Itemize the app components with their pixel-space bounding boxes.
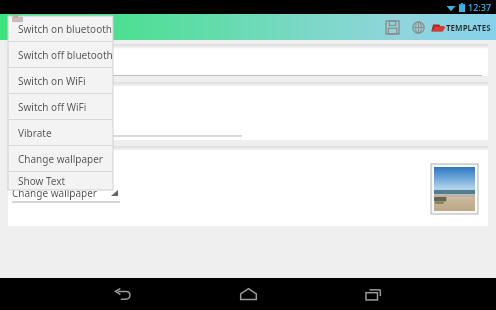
button[interactable]: Change wallpaper — [8, 146, 488, 226]
staticText: Change wallpaper — [18, 152, 103, 166]
staticText: TEMPLATES — [446, 22, 491, 33]
button[interactable]: Wallpaper preview — [431, 164, 478, 214]
button[interactable]: Recent apps — [351, 278, 395, 310]
staticText: 12:37 — [468, 1, 492, 13]
button[interactable]: Back — [101, 278, 145, 310]
button[interactable]: Vibrate — [8, 120, 113, 145]
staticText: happy — [12, 120, 41, 134]
staticText: Vibrate — [18, 126, 52, 140]
staticText: Show Text — [18, 174, 66, 188]
staticText: Change wallpaper — [12, 186, 97, 200]
button[interactable]: Switch off bluetooth — [8, 42, 113, 67]
button[interactable]: Network — [405, 14, 431, 40]
button[interactable]: Save — [379, 14, 405, 40]
staticText: Switch off WiFi — [18, 100, 87, 114]
button[interactable]: Change wallpaper — [8, 146, 113, 171]
staticText: Switch on WiFi — [18, 74, 86, 88]
button[interactable]: happy — [8, 82, 488, 140]
button[interactable]: Switch on WiFi — [8, 68, 113, 93]
button[interactable]: Change wallpaper — [12, 186, 120, 203]
button[interactable]: TEMPLATES — [431, 14, 494, 40]
button[interactable]: Show Text — [8, 172, 113, 190]
button[interactable]: Home — [226, 278, 270, 310]
button[interactable]: Switch on bluetooth — [8, 16, 113, 41]
button[interactable] — [8, 44, 488, 76]
staticText: Switch off bluetooth — [18, 48, 113, 62]
staticText: Switch on bluetooth — [18, 22, 112, 36]
button[interactable]: Switch off WiFi — [8, 94, 113, 119]
